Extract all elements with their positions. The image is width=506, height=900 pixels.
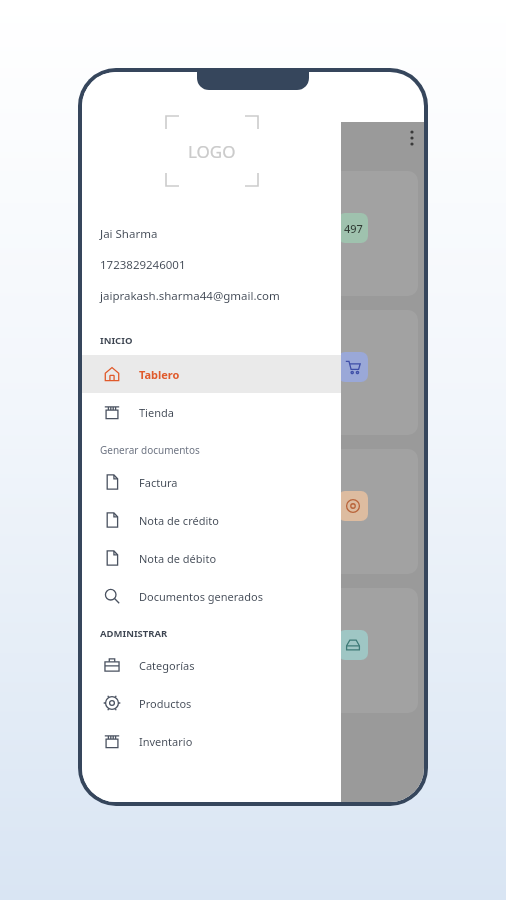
staticText: 497 — [344, 221, 363, 236]
staticText: Jai Sharma — [100, 226, 158, 242]
staticText: jaiprakash.sharma44@gmail.com — [100, 288, 280, 304]
staticText: INICIO — [100, 334, 133, 347]
staticText: Factura — [139, 475, 178, 490]
button[interactable]: Tablero — [82, 355, 341, 393]
staticText: ADMINISTRAR — [100, 627, 168, 640]
staticText: Categorías — [139, 658, 195, 673]
button[interactable]: Inventario — [82, 722, 341, 760]
button[interactable]: Tienda — [82, 393, 341, 431]
staticText: Generar documentos — [100, 443, 200, 457]
button[interactable]: Documentos generados — [82, 577, 341, 615]
staticText: 1723829246001 — [100, 257, 186, 273]
staticText: Nota de débito — [139, 551, 217, 566]
staticText: Documentos generados — [139, 589, 263, 604]
button[interactable]: Nota de débito — [82, 539, 341, 577]
staticText: LOGO — [188, 140, 236, 163]
staticText: Tablero — [139, 367, 180, 382]
button[interactable]: Productos — [82, 684, 341, 722]
button[interactable]: Factura — [82, 463, 341, 501]
staticText: Productos — [139, 696, 192, 711]
button[interactable]: Nota de crédito — [82, 501, 341, 539]
staticText: Inventario — [139, 734, 193, 749]
button[interactable]: Categorías — [82, 646, 341, 684]
staticText: Nota de crédito — [139, 513, 219, 528]
staticText: Tienda — [139, 405, 174, 420]
